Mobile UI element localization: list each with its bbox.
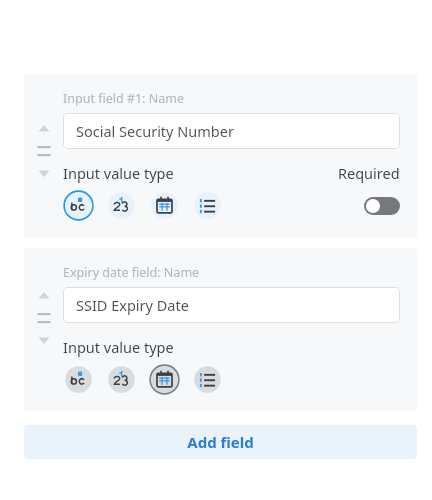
button[interactable]: Required toggle, off xyxy=(364,197,400,215)
button[interactable]: Number value type xyxy=(106,364,137,395)
staticText: Input value type xyxy=(63,337,174,357)
button[interactable]: Social Security Number xyxy=(63,113,400,149)
button[interactable]: List value type xyxy=(192,190,223,221)
button[interactable]: Number value type xyxy=(106,190,137,221)
staticText: Input value type xyxy=(63,163,174,183)
button[interactable]: Text value type xyxy=(63,364,94,395)
button[interactable]: Reorder field xyxy=(36,123,52,179)
button[interactable]: Date value type xyxy=(149,364,180,395)
staticText: Expiry date field: Name xyxy=(63,264,200,281)
staticText: Add field xyxy=(187,432,254,452)
button[interactable]: Add field xyxy=(24,425,417,459)
button[interactable]: Text value type xyxy=(63,190,94,221)
button[interactable]: List value type xyxy=(192,364,223,395)
button[interactable]: SSID Expiry Date xyxy=(63,287,400,323)
staticText: Social Security Number xyxy=(76,121,234,141)
staticText: SSID Expiry Date xyxy=(76,295,189,315)
staticText: Required xyxy=(338,163,400,183)
button[interactable]: Reorder field xyxy=(36,290,52,346)
staticText: Input field #1: Name xyxy=(63,90,184,107)
button[interactable]: Date value type xyxy=(149,190,180,221)
